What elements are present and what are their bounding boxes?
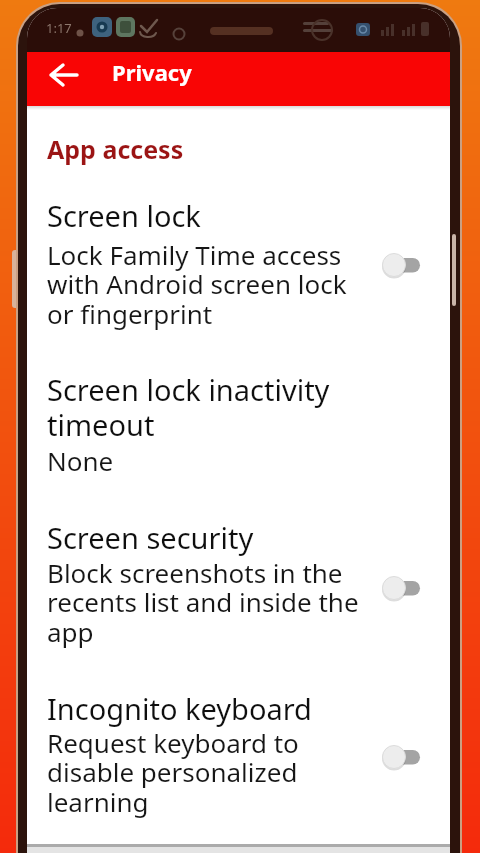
button[interactable] [27,689,450,837]
staticText: Incognito keyboard [47,689,312,728]
staticText: App access [47,132,184,166]
button[interactable] [47,61,81,89]
button[interactable] [27,196,450,344]
staticText: Block screenshots in the recents list an… [47,555,359,650]
staticText: None [47,443,114,478]
staticText: Request keyboard to disable personalized… [47,725,299,820]
staticText: Screen lock [47,196,201,235]
button[interactable] [377,251,425,279]
staticText: Screen security [47,518,254,557]
staticText: Screen lock inactivity timeout [47,370,330,445]
button[interactable] [377,574,425,602]
button[interactable] [27,518,450,661]
staticText: 1:17 [46,19,72,37]
button[interactable] [27,370,450,488]
staticText: Privacy [112,57,192,87]
button[interactable] [377,743,425,771]
staticText: Lock Family Time access with Android scr… [47,237,347,332]
